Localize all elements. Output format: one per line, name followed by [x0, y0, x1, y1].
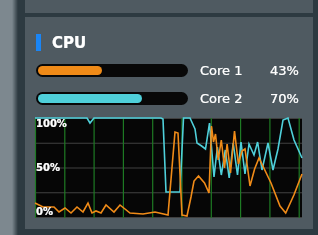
staticText: 43%: [270, 63, 299, 78]
staticText: Core 1: [200, 63, 243, 78]
staticText: 70%: [270, 91, 299, 106]
staticText: Core 2: [200, 91, 243, 106]
button[interactable]: Core 2: [36, 91, 299, 106]
staticText: 50%: [36, 162, 60, 174]
staticText: 0%: [36, 206, 53, 218]
staticText: 100%: [36, 118, 67, 130]
staticText: CPU: [52, 34, 87, 51]
button[interactable]: Core 1: [36, 63, 299, 78]
button[interactable]: CPU: [25, 17, 313, 229]
